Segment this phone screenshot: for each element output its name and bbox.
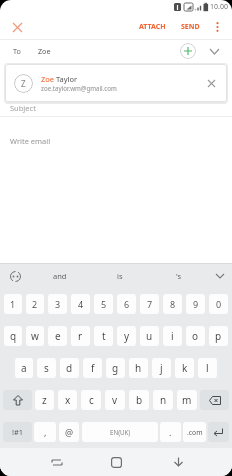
button[interactable]: ATTACH [135, 18, 170, 36]
button[interactable]: z [35, 390, 54, 410]
staticText: 0 [216, 298, 222, 310]
staticText: 8 [170, 298, 176, 310]
button[interactable]: 9 [186, 294, 205, 314]
button[interactable]: x [58, 390, 77, 410]
staticText: v [112, 393, 118, 407]
staticText: @ [65, 426, 74, 438]
button[interactable]: a [15, 358, 33, 378]
button[interactable]: 4 [71, 294, 90, 314]
button[interactable]: t [94, 326, 113, 346]
staticText: s [44, 361, 49, 375]
staticText: zoe.taylor.wm@gmail.com [41, 84, 117, 92]
button[interactable] [165, 449, 191, 475]
button[interactable]: y [117, 326, 136, 346]
button[interactable] [200, 390, 229, 410]
button[interactable]: m [177, 390, 197, 410]
button[interactable]: b [129, 390, 149, 410]
button[interactable]: n [153, 390, 173, 410]
button[interactable]: s [37, 358, 56, 378]
button[interactable]: h [129, 358, 148, 378]
button[interactable]: Z [5, 64, 227, 102]
button[interactable]: 1 [4, 294, 22, 314]
button[interactable]: !#1 [3, 422, 32, 442]
button[interactable] [44, 449, 70, 475]
staticText: k [182, 361, 188, 375]
staticText: z [42, 393, 47, 407]
staticText: 9 [193, 298, 199, 310]
staticText: x [65, 393, 71, 407]
button[interactable]: 8 [163, 294, 182, 314]
button[interactable]: , [34, 422, 56, 442]
button[interactable]: 0 [209, 294, 228, 314]
button[interactable] [207, 44, 221, 58]
button[interactable]: v [105, 390, 125, 410]
staticText: q [10, 329, 17, 343]
staticText: t [102, 329, 106, 343]
button[interactable]: r [71, 326, 90, 346]
staticText: 2 [32, 298, 38, 310]
button[interactable] [180, 43, 196, 59]
staticText: 4 [78, 298, 84, 310]
button[interactable]: 5 [94, 294, 113, 314]
button[interactable]: g [106, 358, 125, 378]
staticText: n [160, 393, 167, 407]
button[interactable]: @ [59, 422, 79, 442]
button[interactable]: is [90, 264, 149, 288]
staticText: ATTACH [139, 22, 166, 32]
button[interactable]: 7 [140, 294, 159, 314]
button[interactable]: 2 [26, 294, 44, 314]
button[interactable]: e [48, 326, 67, 346]
staticText: Zoe Taylor [41, 74, 78, 84]
staticText: y [124, 329, 130, 343]
button[interactable]: f [83, 358, 102, 378]
staticText: b [136, 393, 143, 407]
staticText: e [55, 329, 61, 343]
staticText: o [192, 329, 199, 343]
staticText: 7 [147, 298, 153, 310]
staticText: Subject [10, 103, 36, 113]
button[interactable]: SEND [177, 18, 204, 36]
button[interactable]: 's [149, 264, 208, 288]
staticText: Z [21, 78, 26, 89]
staticText: Write email [10, 136, 51, 146]
button[interactable]: q [4, 326, 22, 346]
button[interactable]: i [163, 326, 182, 346]
button[interactable]: o [186, 326, 205, 346]
staticText: SEND [181, 22, 200, 32]
staticText: r [78, 329, 83, 343]
staticText: m [182, 393, 192, 407]
button[interactable] [208, 422, 229, 442]
button[interactable] [3, 390, 32, 410]
button[interactable]: .com [183, 422, 206, 442]
staticText: d [66, 361, 73, 375]
button[interactable] [208, 264, 232, 288]
staticText: is [117, 271, 123, 281]
button[interactable]: u [140, 326, 159, 346]
staticText: . [169, 426, 172, 438]
staticText: p [215, 329, 222, 343]
staticText: 5 [101, 298, 107, 310]
button[interactable]: k [175, 358, 194, 378]
button[interactable]: p [209, 326, 228, 346]
staticText: EN(UK) [110, 428, 131, 436]
staticText: u [146, 329, 153, 343]
button[interactable]: . [160, 422, 181, 442]
button[interactable]: 6 [117, 294, 136, 314]
button[interactable]: c [81, 390, 101, 410]
staticText: f [91, 361, 95, 375]
staticText: .com [187, 428, 203, 437]
button[interactable] [211, 21, 223, 33]
button[interactable]: d [60, 358, 79, 378]
button[interactable]: and [30, 264, 90, 288]
button[interactable]: j [152, 358, 171, 378]
button[interactable] [103, 449, 129, 475]
button[interactable]: 3 [48, 294, 67, 314]
button[interactable]: w [26, 326, 44, 346]
staticText: 1 [10, 298, 16, 310]
button[interactable] [0, 264, 30, 288]
staticText: i [171, 329, 174, 343]
button[interactable] [9, 19, 25, 35]
button[interactable]: EN(UK) [82, 422, 158, 442]
button[interactable]: l [198, 358, 217, 378]
staticText: Zoe [38, 46, 51, 56]
